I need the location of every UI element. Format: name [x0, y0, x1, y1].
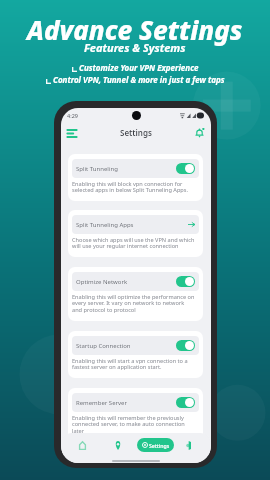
staticText: Choose which apps will use the VPN and w…	[72, 236, 195, 250]
staticText: Optimize Network	[76, 278, 176, 286]
staticText: Features & Systems	[84, 40, 186, 55]
button[interactable]: Menu	[64, 125, 80, 141]
button[interactable]: Toggle	[176, 163, 195, 174]
staticText: Advance Settings	[27, 12, 243, 47]
button[interactable]: Toggle	[176, 397, 195, 408]
staticText: Split Tunneling Apps	[76, 221, 188, 229]
staticText: Control VPN, Tunnel & more in just a few…	[53, 74, 225, 85]
button[interactable]: Startup Connection	[68, 331, 203, 378]
staticText: Enabling this will remember the previous…	[72, 414, 195, 435]
button[interactable]: Toggle	[176, 276, 195, 287]
button[interactable]: Notifications	[191, 125, 207, 141]
staticText: Enabling this will start a vpn connectio…	[72, 357, 195, 371]
staticText: Remember Server	[76, 399, 176, 407]
staticText: Customize Your VPN Experience	[79, 62, 199, 73]
staticText: Enabling this will optimize the performa…	[72, 293, 195, 314]
staticText: Settings	[149, 442, 170, 449]
button[interactable]: Location	[111, 438, 125, 452]
button[interactable]: Split Tunneling	[68, 154, 203, 201]
button[interactable]: Split Tunneling Apps	[68, 210, 203, 257]
button[interactable]: Optimize Network	[68, 267, 203, 321]
staticText: Enabling this will block vpn connection …	[72, 180, 195, 194]
staticText: Startup Connection	[76, 342, 176, 350]
button[interactable]: Settings	[137, 438, 174, 452]
staticText: Settings	[120, 127, 152, 138]
staticText: 4:29	[67, 112, 78, 119]
button[interactable]: Home	[75, 438, 89, 452]
button[interactable]: Profile	[182, 438, 196, 452]
button[interactable]: Remember Server	[68, 388, 203, 442]
staticText: Split Tunneling	[76, 165, 176, 173]
button[interactable]: Toggle	[176, 340, 195, 351]
